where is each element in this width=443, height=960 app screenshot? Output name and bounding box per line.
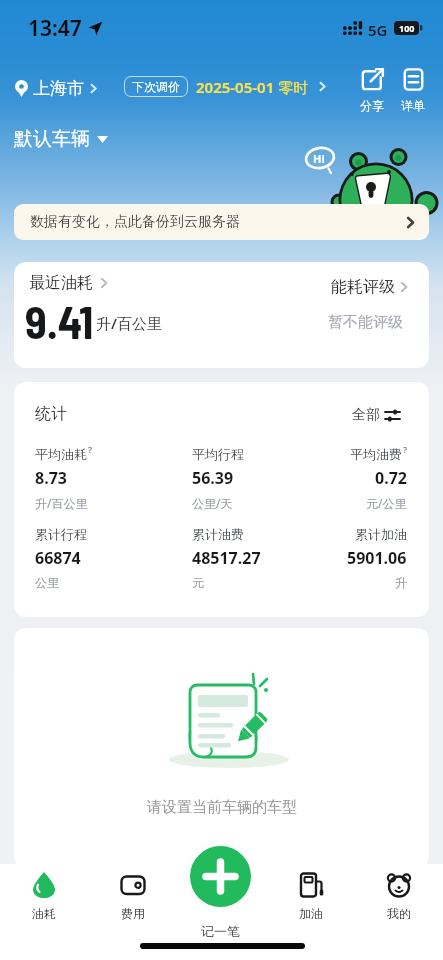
staticText: 累计行程 [35, 526, 87, 542]
button[interactable]: 详单 [393, 68, 433, 113]
staticText: 数据有变化，点此备份到云服务器 [30, 213, 240, 231]
staticText: 元 [192, 575, 204, 590]
button[interactable]: 默认车辆 [14, 127, 108, 151]
staticText: 请设置当前车辆的车型 [147, 798, 297, 817]
staticText: 公里/天 [192, 495, 233, 511]
staticText: 费用 [121, 906, 145, 921]
staticText: 升/百公里 [35, 495, 88, 511]
staticText: 升/百公里 [96, 313, 162, 333]
staticText: 公里 [35, 575, 59, 590]
staticText: 默认车辆 [14, 127, 90, 151]
button[interactable]: 我的 [369, 872, 429, 921]
staticText: 平均油耗 [35, 446, 87, 462]
button[interactable]: 费用 [103, 872, 163, 921]
button[interactable]: 加油 [281, 872, 341, 921]
staticText: 最近油耗 [29, 273, 93, 293]
button[interactable]: 全部 [352, 406, 400, 424]
button[interactable]: 最近油耗 [14, 262, 429, 368]
staticText: 记一笔 [201, 923, 240, 939]
staticText: 48517.27 [192, 547, 261, 569]
staticText: 升 [395, 575, 407, 590]
staticText: 上海市 [33, 78, 84, 99]
staticText: 暂不能评级 [328, 313, 403, 332]
staticText: 累计油费 [192, 526, 244, 542]
staticText: 全部 [352, 406, 380, 424]
staticText: 5G [368, 20, 388, 40]
staticText: 13:47 [28, 14, 82, 43]
staticText: 下次调价 [132, 79, 180, 94]
staticText: 详单 [401, 98, 425, 113]
staticText: ? [403, 443, 408, 455]
button[interactable]: 数据有变化，点此备份到云服务器 [14, 204, 429, 240]
staticText: 平均油费 [350, 446, 402, 462]
staticText: 5901.06 [347, 547, 407, 569]
staticText: 9.41 [25, 294, 94, 348]
button[interactable]: 请设置当前车辆的车型 [14, 628, 429, 868]
button[interactable]: 油耗 [14, 872, 74, 921]
staticText: 2025-05-01 零时 [196, 77, 309, 97]
button[interactable]: 下次调价 [124, 76, 328, 97]
button[interactable]: 分享 [352, 68, 392, 113]
staticText: 8.73 [35, 467, 67, 489]
staticText: 累计加油 [355, 526, 407, 542]
staticText: 56.39 [192, 467, 234, 489]
staticText: 统计 [35, 404, 67, 424]
staticText: 0.72 [375, 467, 407, 489]
staticText: 平均行程 [192, 446, 244, 462]
staticText: 分享 [360, 98, 384, 113]
staticText: 油耗 [32, 906, 56, 921]
staticText: 能耗评级 [331, 277, 395, 297]
staticText: 66874 [35, 547, 81, 569]
staticText: ? [88, 443, 93, 455]
button[interactable] [190, 846, 251, 907]
staticText: 加油 [299, 906, 323, 921]
staticText: Hi [313, 151, 325, 166]
staticText: 我的 [387, 906, 411, 921]
button[interactable]: 上海市 [33, 78, 99, 99]
staticText: 元/公里 [366, 495, 407, 511]
staticText: 100 [399, 22, 415, 34]
